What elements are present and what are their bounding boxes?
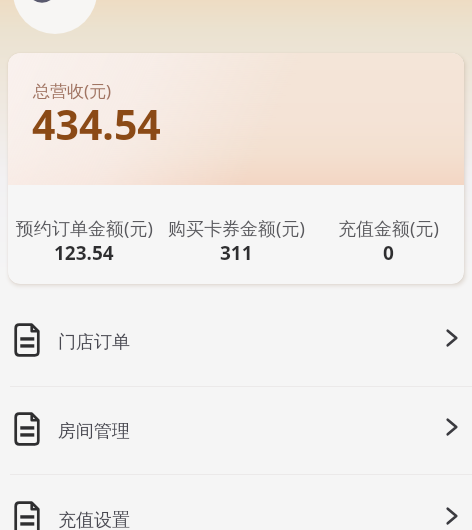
staticText: 0	[383, 240, 394, 266]
button[interactable]: 门店订单	[0, 295, 472, 384]
staticText: 充值金额(元)	[338, 216, 439, 241]
button[interactable]: 充值设置	[0, 473, 472, 530]
staticText: 充值设置	[58, 509, 130, 530]
staticText: 总营收(元)	[33, 79, 112, 102]
staticText: 123.54	[54, 240, 114, 266]
button[interactable]: 房间管理	[0, 384, 472, 473]
staticText: 购买卡券金额(元)	[168, 216, 305, 241]
staticText: 预约订单金额(元)	[16, 216, 153, 241]
staticText: 311	[220, 240, 253, 266]
staticText: 房间管理	[58, 420, 130, 443]
staticText: 门店订单	[58, 331, 130, 354]
staticText: 434.54	[32, 96, 161, 152]
